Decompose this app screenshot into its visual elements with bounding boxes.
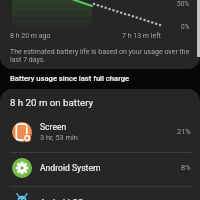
staticText: Android OS xyxy=(40,198,84,200)
staticText: 50% xyxy=(177,0,190,8)
staticText: Android System xyxy=(40,163,101,173)
button[interactable]: Screen xyxy=(0,113,200,152)
staticText: 8% xyxy=(181,163,191,172)
staticText: 21% xyxy=(177,127,191,136)
button[interactable]: Android OS xyxy=(0,187,200,200)
staticText: 8 h 20 m ago xyxy=(10,32,51,40)
staticText: 3 hr, 53 min xyxy=(40,133,78,142)
staticText: Screen xyxy=(40,122,67,132)
button[interactable]: Android System xyxy=(0,152,200,187)
staticText: 7 h 13 m left xyxy=(122,32,161,40)
staticText: 8 h 20 m on battery xyxy=(10,97,94,108)
staticText: 0% xyxy=(181,23,190,31)
staticText: The estimated battery life is based on y… xyxy=(10,48,198,64)
staticText: Battery usage since last full charge xyxy=(10,74,130,83)
